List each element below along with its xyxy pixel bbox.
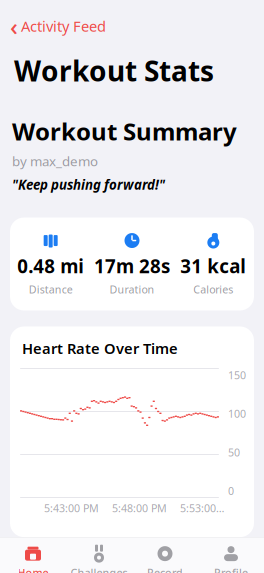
staticText: Calories [193,282,233,296]
staticText: Workout Summary [12,115,237,147]
staticText: 5:53:00… [180,501,224,515]
staticText: Duration [109,282,154,296]
button[interactable]: Challenges [66,538,132,573]
staticText: ‹ [10,10,18,42]
staticText: by max_demo [12,152,98,170]
staticText: Activity Feed [21,16,106,36]
staticText: 0 [228,484,234,498]
staticText: 50 [228,445,240,459]
staticText: Profile [214,566,248,573]
staticText: 31 kcal [180,253,246,278]
staticText: 100 [228,407,246,421]
staticText: Heart Rate Over Time [22,338,178,358]
staticText: "Keep pushing forward!" [12,176,165,193]
staticText: Record [147,566,183,573]
button[interactable]: Record [132,538,198,573]
staticText: 17m 28s [94,253,170,278]
staticText: Workout Stats [14,52,214,89]
staticText: 5:43:00 PM [44,501,99,515]
staticText: 0.48 mi [17,253,84,278]
staticText: Home [17,566,48,573]
button[interactable]: Profile [198,538,264,573]
staticText: 150 [228,368,246,382]
staticText: 5:48:00 PM [112,501,167,515]
button[interactable]: ‹ [0,8,264,46]
button[interactable]: Home [0,538,66,573]
staticText: Challenges [70,566,127,573]
staticText: Distance [29,282,73,296]
